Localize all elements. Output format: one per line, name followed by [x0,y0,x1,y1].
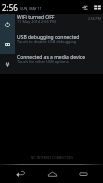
staticText: USB debugging connected [17,34,80,41]
staticText: SUN, MAY 11 [20,6,42,11]
button[interactable]: Back [8,165,32,183]
staticText: NO INTERNET CONNECTION [31,156,73,160]
button[interactable]: Connected as a media device [0,54,103,74]
staticText: 2:56 PM [88,16,101,21]
button[interactable]: Home [40,165,64,183]
staticText: Touch for other USB options [17,59,69,64]
button[interactable]: USB debugging connected [0,34,103,54]
staticText: 2:56 [2,2,18,13]
staticText: Touch to disable USB debugging [17,39,77,44]
button[interactable]: WiFi turned OFF [0,14,103,34]
staticText: Connected as a media device [17,54,86,61]
button[interactable]: Recent apps [71,165,95,183]
staticText: 11 May 2014 2:56 PM [17,19,56,24]
staticText: WiFi turned OFF [17,14,55,21]
